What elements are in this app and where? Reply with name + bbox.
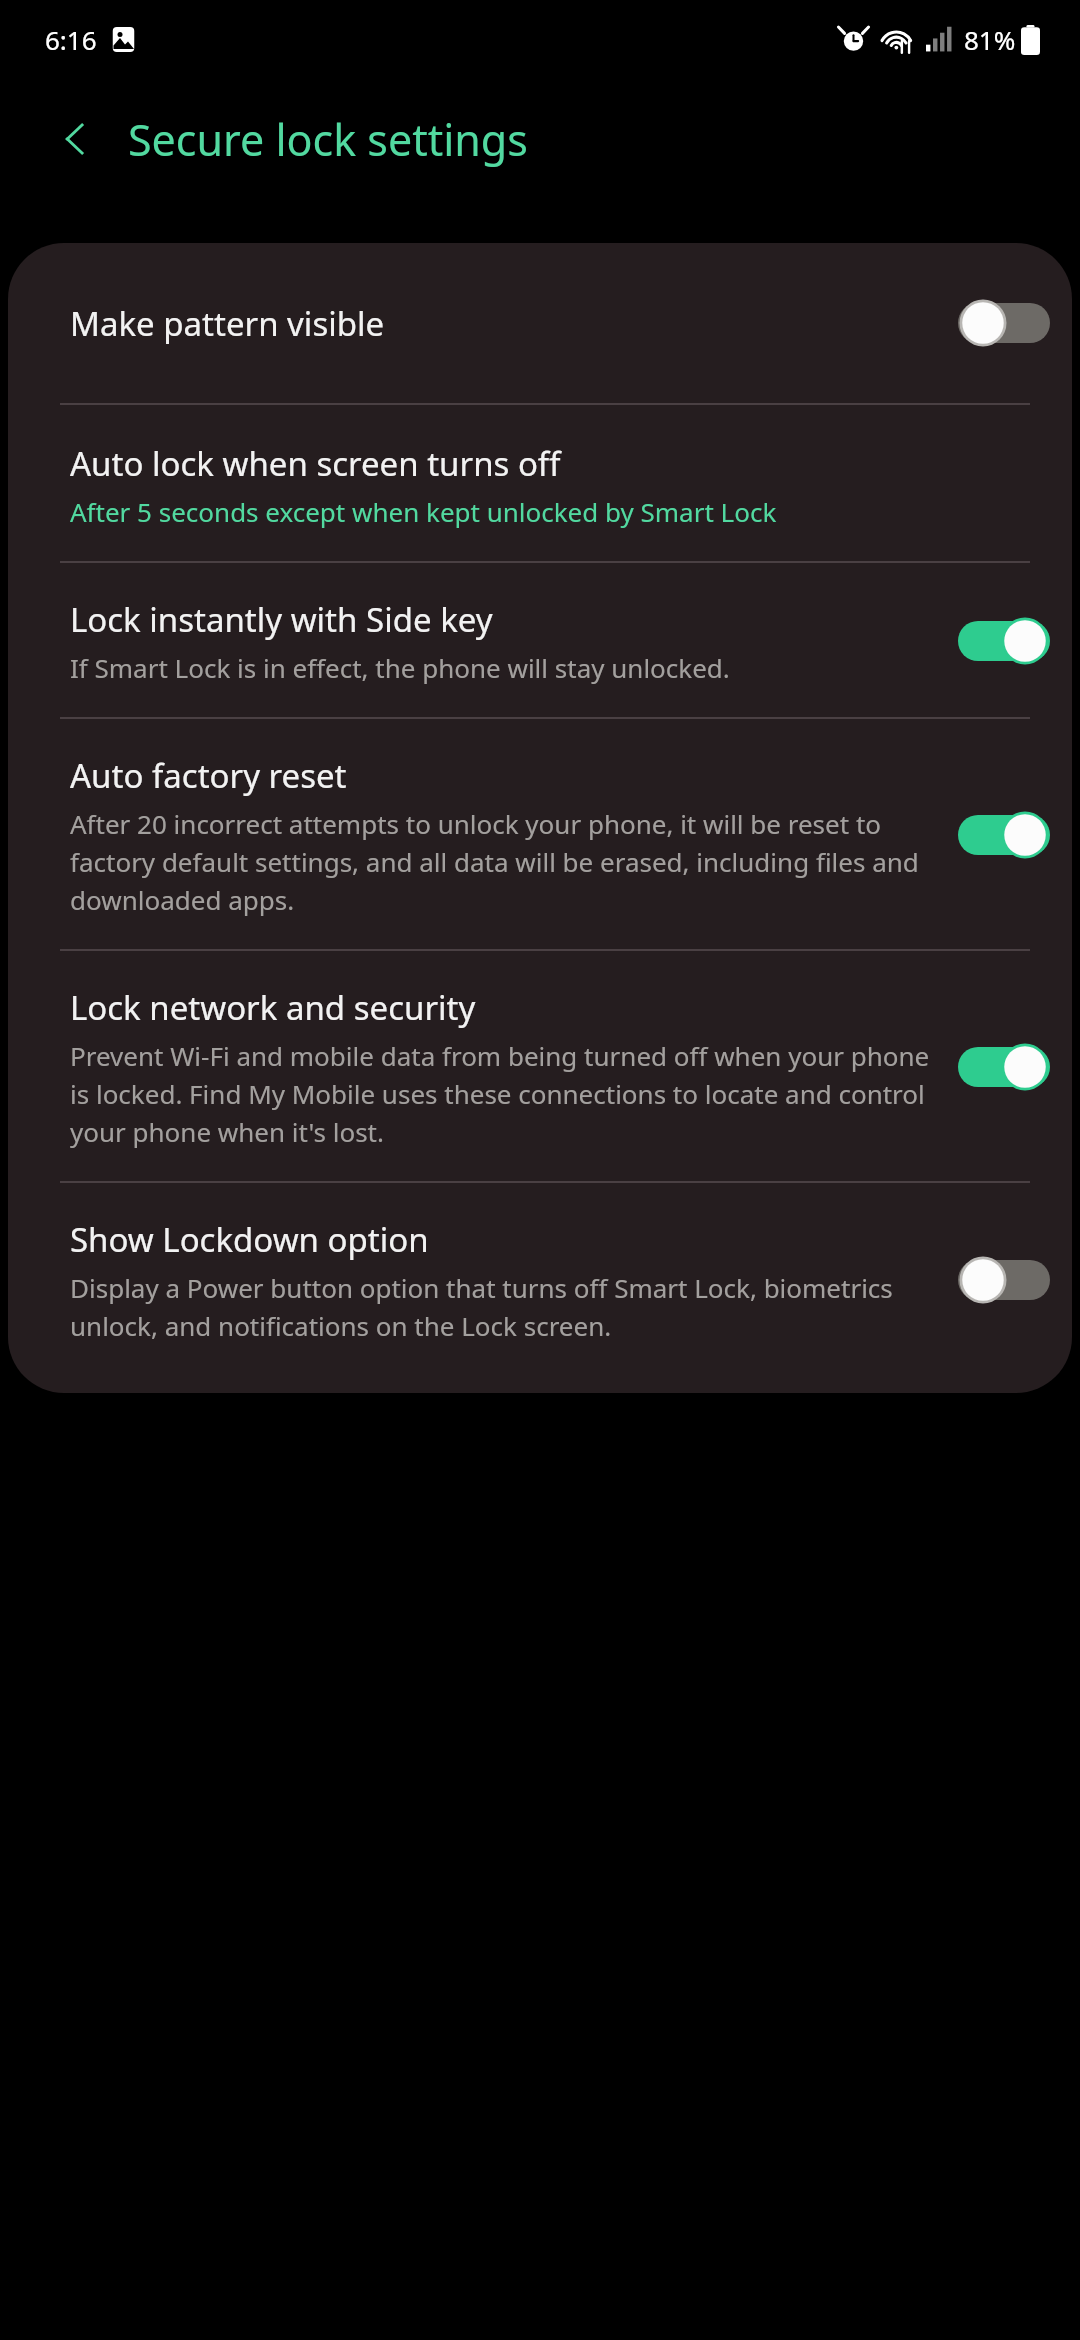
staticText: Display a Power button option that turns…	[70, 1270, 942, 1343]
button[interactable]: Auto factory reset toggle	[952, 803, 1056, 867]
button[interactable]: Lock network and security	[8, 951, 1072, 1181]
button[interactable]: Make pattern visible	[8, 243, 1072, 403]
button[interactable]: Lock instantly with Side key toggle	[952, 609, 1056, 673]
staticText: After 5 seconds except when kept unlocke…	[70, 494, 777, 529]
staticText: 6:16	[45, 22, 97, 57]
staticText: After 20 incorrect attempts to unlock yo…	[70, 806, 942, 917]
staticText: Prevent Wi-Fi and mobile data from being…	[70, 1038, 942, 1149]
staticText: Auto factory reset	[70, 753, 347, 798]
staticText: If Smart Lock is in effect, the phone wi…	[70, 650, 730, 685]
staticText: Lock instantly with Side key	[70, 597, 493, 642]
button[interactable]: Show Lockdown option toggle	[952, 1248, 1056, 1312]
button[interactable]: Lock network and security toggle	[952, 1035, 1056, 1099]
button[interactable]: Make pattern visible toggle	[952, 291, 1056, 355]
button[interactable]: Lock instantly with Side key	[8, 563, 1072, 717]
staticText: Auto lock when screen turns off	[70, 441, 561, 486]
staticText: Show Lockdown option	[70, 1217, 429, 1262]
staticText: Secure lock settings	[128, 110, 528, 169]
button[interactable]: Auto factory reset	[8, 719, 1072, 949]
staticText: 81%	[964, 22, 1016, 57]
staticText: Make pattern visible	[70, 301, 385, 346]
button[interactable]: Back	[50, 113, 102, 165]
staticText: Lock network and security	[70, 985, 476, 1030]
button[interactable]: Auto lock when screen turns off	[8, 405, 1072, 561]
button[interactable]: Show Lockdown option	[8, 1183, 1072, 1393]
